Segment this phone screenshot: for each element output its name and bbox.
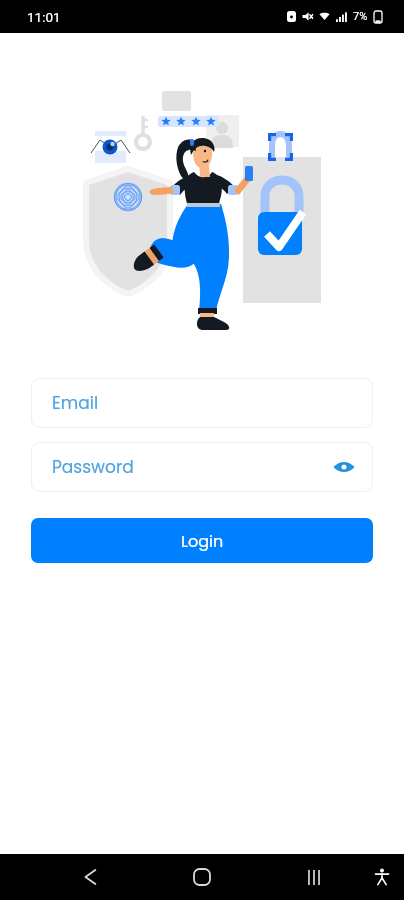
button[interactable]: Recent apps <box>296 859 332 895</box>
button[interactable]: Password <box>31 442 373 492</box>
button[interactable]: Email <box>31 378 373 428</box>
button[interactable]: Back <box>72 859 108 895</box>
button[interactable]: Show password <box>332 455 356 479</box>
button[interactable]: Accessibility <box>366 861 398 893</box>
staticText: Password <box>52 455 134 479</box>
button[interactable]: Home <box>184 859 220 895</box>
staticText: Email <box>52 391 99 415</box>
staticText: 11:01 <box>27 9 61 25</box>
button[interactable]: Login <box>31 518 373 563</box>
staticText: 7% <box>353 10 368 23</box>
staticText: Login <box>181 530 224 552</box>
